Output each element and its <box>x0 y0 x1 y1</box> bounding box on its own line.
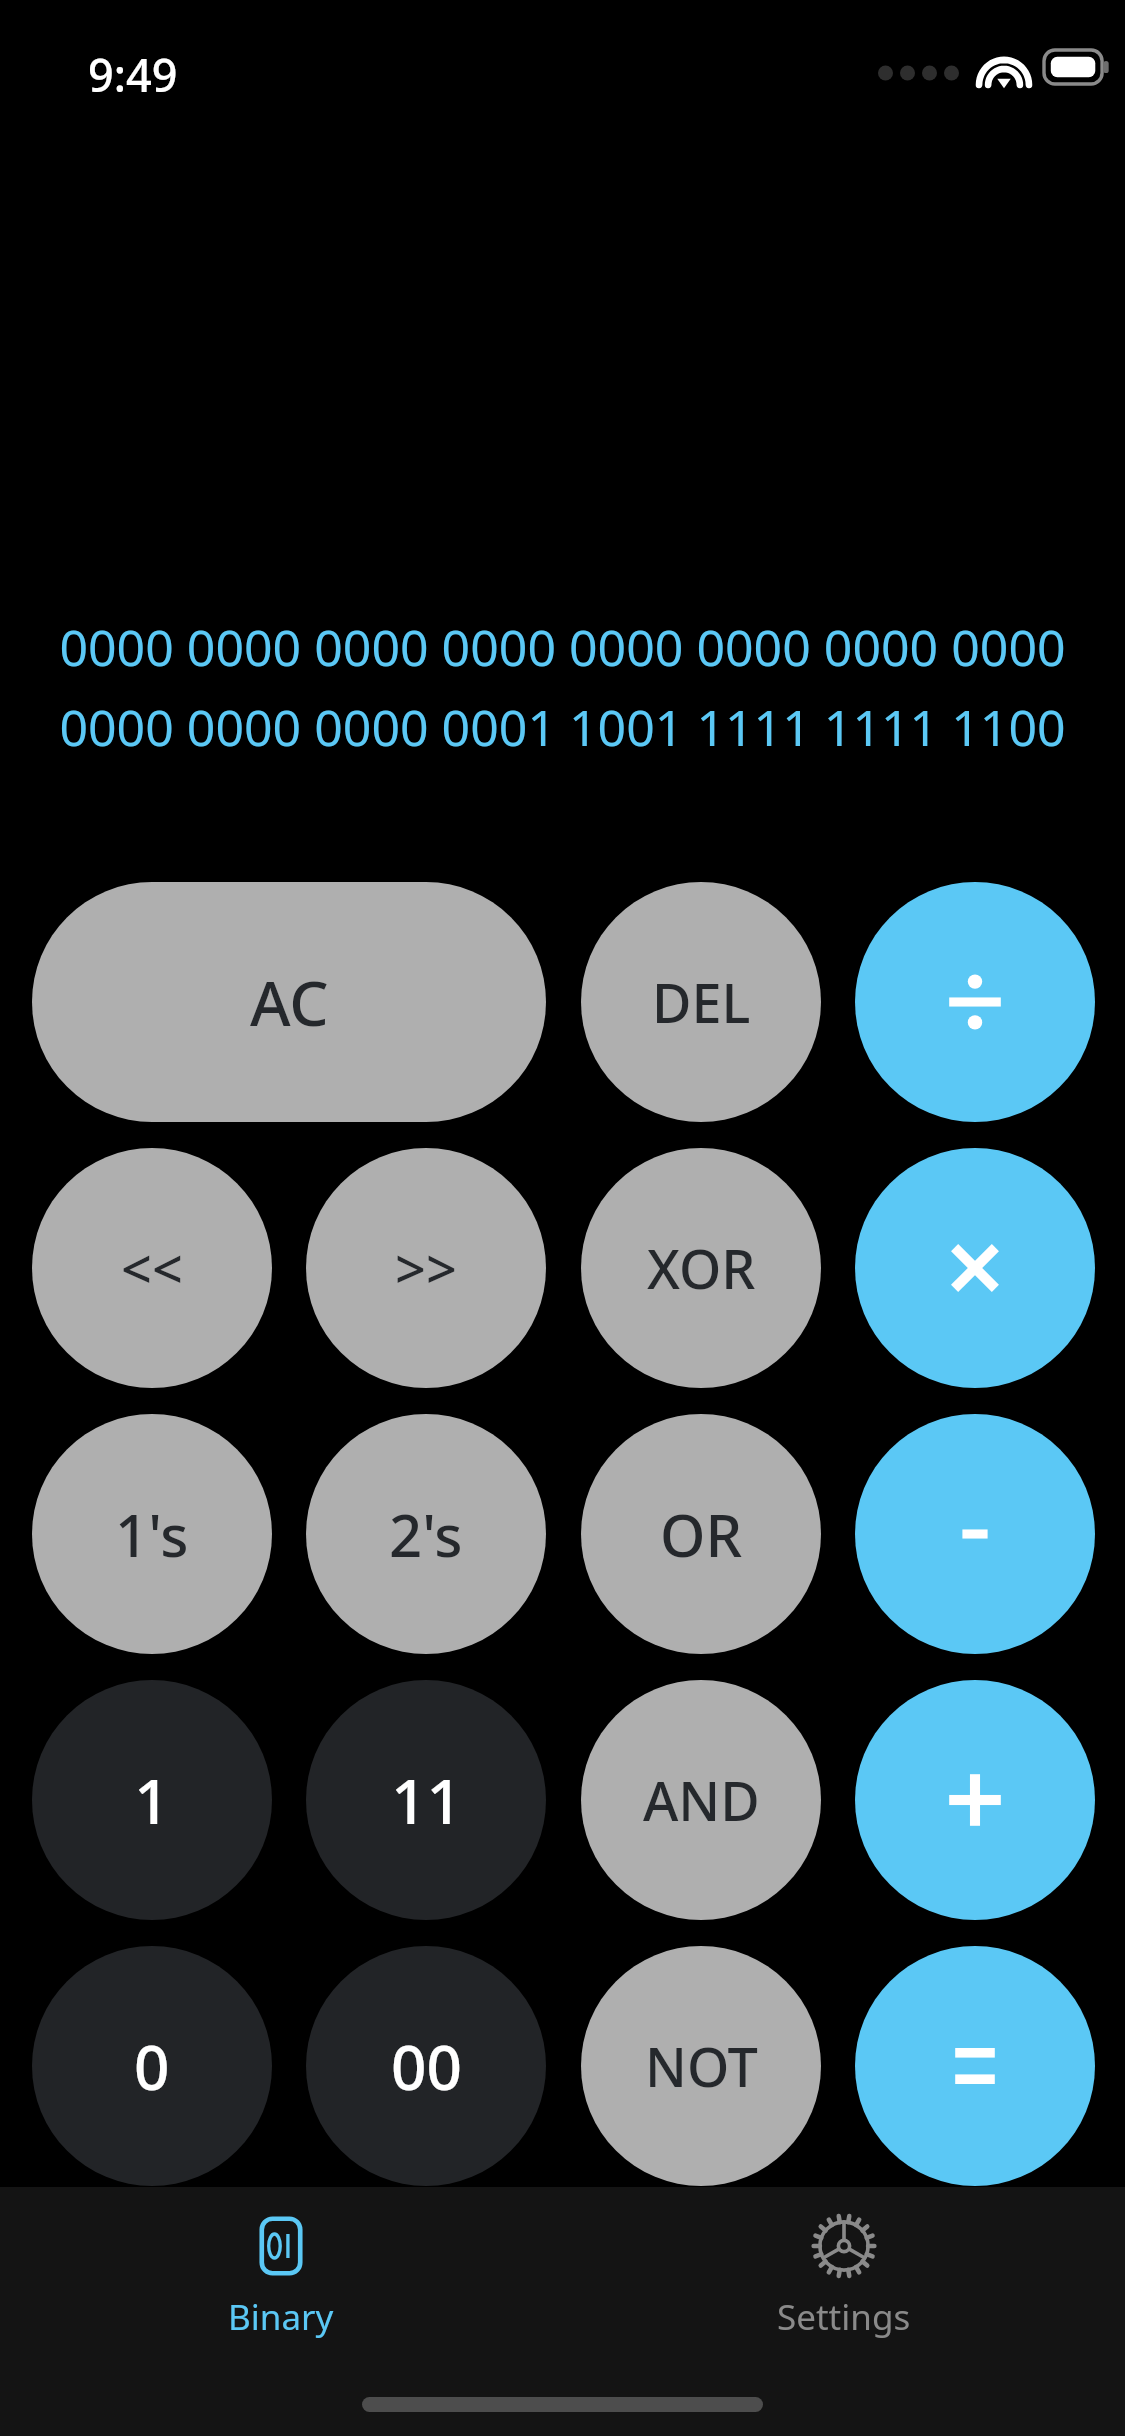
button[interactable]: Divide <box>855 882 1095 1122</box>
button[interactable]: 2's <box>306 1414 546 1654</box>
button[interactable]: 11 <box>306 1680 546 1920</box>
staticText: 0000 0000 0000 0000 0000 0000 0000 0000 <box>24 613 1101 681</box>
staticText: AND <box>643 1763 760 1837</box>
button[interactable]: << <box>32 1148 272 1388</box>
staticText: 1 <box>134 1758 170 1842</box>
staticText: >> <box>395 1231 457 1305</box>
button[interactable]: AC <box>32 882 546 1122</box>
button[interactable]: Settings <box>714 2213 974 2341</box>
staticText: 2's <box>389 1495 463 1574</box>
staticText: NOT <box>645 2029 758 2103</box>
staticText: DEL <box>652 965 751 1039</box>
staticText: 9:49 <box>88 44 178 105</box>
staticText: 0 <box>134 2024 170 2108</box>
button[interactable]: Plus <box>855 1680 1095 1920</box>
button[interactable]: OR <box>581 1414 821 1654</box>
button[interactable]: 1 <box>32 1680 272 1920</box>
staticText: OR <box>660 1495 743 1574</box>
staticText: Binary <box>228 2293 334 2341</box>
staticText: Settings <box>777 2293 911 2341</box>
button[interactable]: AND <box>581 1680 821 1920</box>
staticText: XOR <box>647 1231 756 1305</box>
button[interactable]: 00 <box>306 1946 546 2186</box>
staticText: << <box>121 1231 183 1305</box>
staticText: 00 <box>391 2024 462 2108</box>
button[interactable]: NOT <box>581 1946 821 2186</box>
button[interactable]: Minus <box>855 1414 1095 1654</box>
button[interactable]: Multiply <box>855 1148 1095 1388</box>
staticText: AC <box>250 960 329 1044</box>
button[interactable]: DEL <box>581 882 821 1122</box>
button[interactable]: 1's <box>32 1414 272 1654</box>
staticText: 0000 0000 0000 0001 1001 1111 1111 1100 <box>24 693 1101 761</box>
button[interactable]: Binary <box>151 2213 411 2341</box>
button[interactable]: XOR <box>581 1148 821 1388</box>
button[interactable]: >> <box>306 1148 546 1388</box>
staticText: 11 <box>391 1758 462 1842</box>
button[interactable]: Equals <box>855 1946 1095 2186</box>
button[interactable]: 0 <box>32 1946 272 2186</box>
staticText: 1's <box>115 1495 189 1574</box>
